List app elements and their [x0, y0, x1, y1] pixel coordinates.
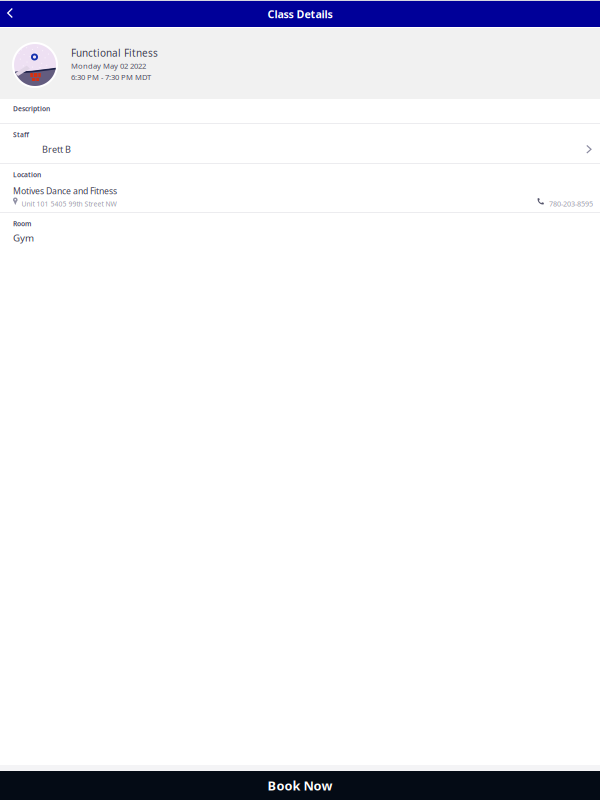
- staticText: Room: [13, 219, 31, 228]
- staticText: Unit 101 5405 99th Street NW: [22, 199, 117, 208]
- button[interactable]: Book Now: [0, 771, 600, 800]
- staticText: Description: [13, 104, 50, 113]
- staticText: Monday May 02 2022: [71, 61, 146, 71]
- staticText: Brett B: [42, 143, 71, 155]
- staticText: Motives Dance and Fitness: [13, 185, 117, 197]
- button[interactable]: Back: [0, 1, 20, 27]
- staticText: 780-203-8595: [549, 199, 593, 209]
- staticText: Gym: [13, 231, 34, 244]
- staticText: Location: [13, 170, 41, 179]
- staticText: Book Now: [267, 777, 332, 794]
- staticText: Staff: [13, 130, 29, 139]
- staticText: Functional Fitness: [71, 46, 158, 60]
- button[interactable]: 780-203-8595: [537, 199, 600, 209]
- staticText: 6:30 PM - 7:30 PM MDT: [71, 72, 151, 82]
- staticText: Class Details: [267, 7, 332, 21]
- button[interactable]: Staff: [0, 124, 600, 163]
